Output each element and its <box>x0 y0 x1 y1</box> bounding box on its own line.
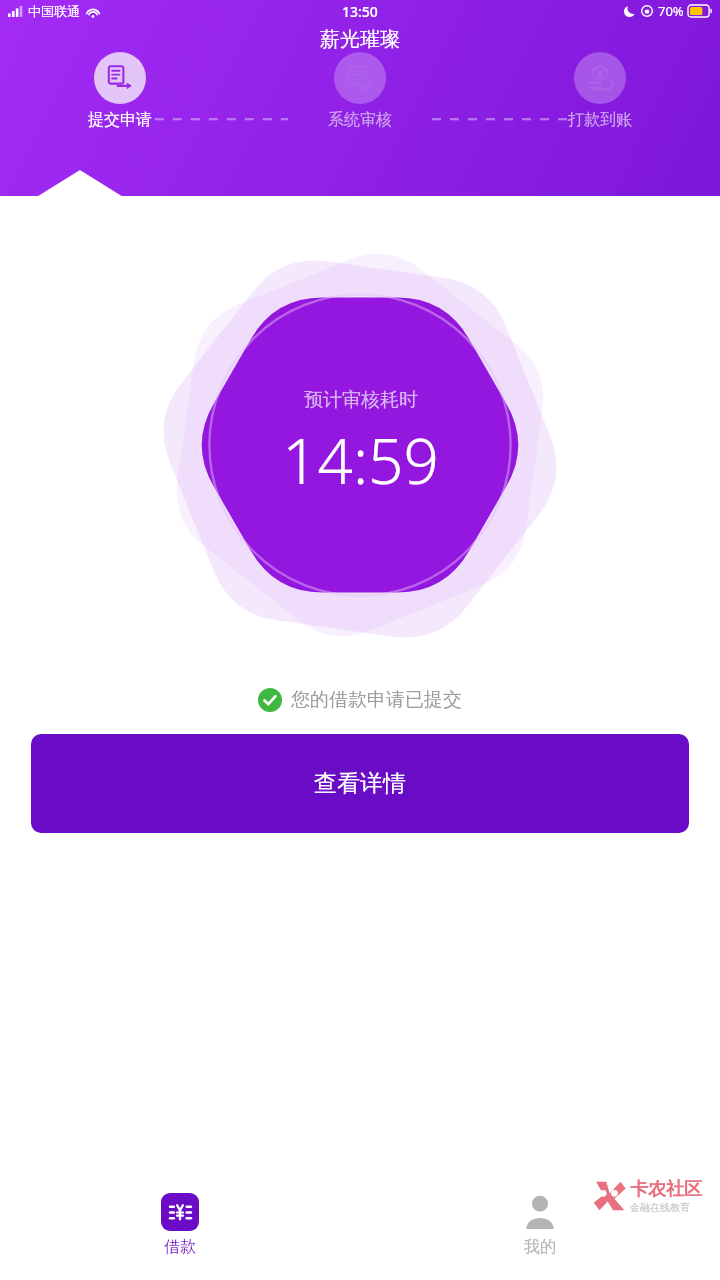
staticText: 我的 <box>524 1237 556 1257</box>
staticText: 70% <box>658 2 684 20</box>
staticText: 系统审核 <box>328 110 392 130</box>
staticText: 卡农社区 <box>630 1178 702 1201</box>
button[interactable]: 查看详情 <box>31 734 689 833</box>
staticText: 中国联通 <box>28 3 80 19</box>
button[interactable]: 打款到账 <box>480 52 720 130</box>
staticText: 您的借款申请已提交 <box>291 688 462 712</box>
staticText: 预计审核耗时 <box>304 388 418 412</box>
staticText: 薪光璀璨 <box>320 27 400 52</box>
button[interactable]: 系统审核 <box>240 52 480 130</box>
staticText: 查看详情 <box>314 769 406 798</box>
staticText: 14:59 <box>282 418 439 502</box>
staticText: 13:50 <box>342 2 378 21</box>
staticText: 借款 <box>164 1237 196 1257</box>
staticText: 金融在线教育 <box>630 1201 690 1214</box>
staticText: 提交申请 <box>88 110 152 130</box>
button[interactable]: 我的 <box>360 1170 720 1280</box>
staticText: 打款到账 <box>568 110 632 130</box>
button[interactable]: 提交申请 <box>0 52 240 130</box>
button[interactable]: 借款 <box>0 1170 360 1280</box>
